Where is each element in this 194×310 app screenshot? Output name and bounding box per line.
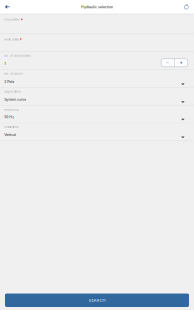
button[interactable]: No. of duty pumps: [0, 52, 194, 69]
staticText: Frequency: [4, 108, 18, 111]
staticText: Flow [m³/h]: [4, 18, 20, 21]
staticText: System curve: [4, 97, 26, 102]
staticText: Vertical: [4, 133, 16, 137]
button[interactable]: Back: [0, 0, 16, 14]
button[interactable]: Installation: [0, 123, 194, 140]
button[interactable]: Refresh: [178, 0, 194, 14]
button[interactable]: No. of poles: [0, 70, 194, 87]
staticText: 50 Hz: [4, 115, 14, 119]
staticText: No. of duty pumps: [4, 54, 30, 57]
staticText: 1: [4, 62, 5, 66]
button[interactable]: Head [mwc]: [0, 34, 194, 51]
staticText: Head [mwc]: [4, 38, 19, 41]
staticText: Installation: [4, 125, 19, 129]
button[interactable]: SEARCH: [5, 293, 189, 307]
staticText: Hydraulic selection: [81, 5, 113, 9]
staticText: Application: [4, 90, 21, 93]
button[interactable]: Flow [m³/h]: [0, 14, 194, 33]
button[interactable]: Application: [0, 88, 194, 105]
staticText: SEARCH: [88, 298, 105, 303]
staticText: No. of poles: [4, 72, 22, 75]
button[interactable]: Frequency: [0, 106, 194, 123]
staticText: 2 Pole: [4, 80, 14, 84]
